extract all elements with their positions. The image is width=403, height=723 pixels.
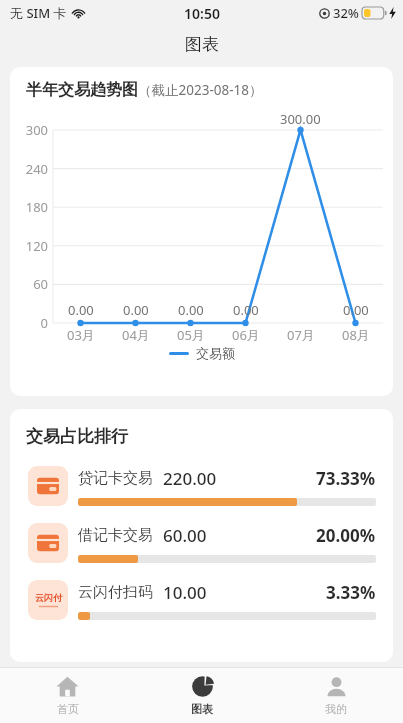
staticText: 05月: [177, 326, 205, 344]
staticText: 10.00: [163, 581, 207, 604]
staticText: 云闪付扫码: [78, 583, 153, 602]
staticText: 贷记卡交易: [78, 469, 153, 488]
staticText: 32%: [333, 4, 359, 22]
staticText: （截止2023-08-18）: [138, 81, 263, 99]
staticText: 3.33%: [326, 581, 376, 604]
staticText: 60: [10, 275, 48, 293]
staticText: 73.33%: [316, 467, 376, 490]
button[interactable]: 图表: [135, 668, 269, 723]
staticText: 300.00: [280, 110, 321, 128]
staticText: 0.00: [123, 301, 149, 319]
staticText: 0.00: [68, 301, 94, 319]
staticText: 07月: [287, 326, 315, 344]
staticText: 220.00: [163, 467, 217, 490]
staticText: 无 SIM 卡: [10, 4, 67, 22]
button[interactable]: 首页: [0, 668, 135, 723]
staticText: 首页: [57, 702, 79, 716]
staticText: 300: [10, 121, 48, 139]
staticText: 20.00%: [316, 524, 376, 547]
staticText: 云闪付: [35, 592, 62, 603]
staticText: 图表: [191, 702, 213, 716]
staticText: 0.00: [233, 301, 259, 319]
staticText: 04月: [122, 326, 150, 344]
staticText: 240: [10, 160, 48, 178]
staticText: 借记卡交易: [78, 526, 153, 545]
button[interactable]: 借记卡交易: [10, 523, 393, 563]
staticText: 半年交易趋势图: [26, 80, 138, 100]
button[interactable]: 贷记卡交易: [10, 466, 393, 506]
staticText: 交易占比排行: [26, 426, 128, 447]
staticText: 0: [10, 314, 48, 332]
staticText: 图表: [185, 34, 219, 55]
staticText: 06月: [232, 326, 260, 344]
staticText: 03月: [67, 326, 95, 344]
staticText: 0.00: [343, 301, 369, 319]
staticText: 0.00: [178, 301, 204, 319]
staticText: 60.00: [163, 524, 207, 547]
button[interactable]: 我的: [269, 668, 403, 723]
staticText: 120: [10, 237, 48, 255]
staticText: 10:50: [184, 4, 220, 23]
staticText: 交易额: [196, 345, 235, 361]
staticText: 08月: [342, 326, 370, 344]
button[interactable]: 云闪付: [10, 580, 393, 620]
staticText: 180: [10, 198, 48, 216]
staticText: 我的: [325, 702, 347, 716]
